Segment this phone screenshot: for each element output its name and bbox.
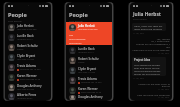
staticText: Find people xyxy=(69,19,83,22)
button[interactable]: Karen Werner xyxy=(66,85,112,95)
staticText: Julia Herbst xyxy=(78,24,95,28)
staticText: Send message 37:45 xyxy=(20,78,41,81)
staticText: Karen Werner xyxy=(78,87,98,91)
staticText: Let's refine the project plan and focus … xyxy=(134,63,164,75)
staticText: Find people xyxy=(8,19,22,22)
button[interactable]: Project Idea xyxy=(132,57,166,76)
staticText: 11 Apr, 2021 xyxy=(158,52,170,55)
staticText: Files content xyxy=(133,18,147,21)
button[interactable]: Yes, thanks! So, I forgot time. Thanks f… xyxy=(132,37,170,52)
button[interactable]: Travis Adams xyxy=(5,62,51,72)
staticText: People xyxy=(69,11,88,19)
staticText: Julia Herbst xyxy=(133,11,161,18)
button[interactable]: Clyde Bryant xyxy=(5,52,51,62)
staticText: I got the funds you asked for! xyxy=(132,93,170,96)
staticText: Julia Herbst xyxy=(17,24,34,28)
staticText: Travis Adams xyxy=(17,64,36,68)
staticText: Douglas Anthony xyxy=(17,84,42,88)
button[interactable]: Douglas Anthony xyxy=(66,95,112,100)
staticText: Last seen 2 min ago xyxy=(17,28,37,31)
staticText: Hello, have you read my ideas about the … xyxy=(134,24,164,30)
staticText: Last seen 1 h ago xyxy=(17,58,35,61)
staticText: Clyde Bryant xyxy=(78,67,97,71)
staticText: 11 Apr, 2021 xyxy=(133,77,145,80)
button[interactable]: Julia Herbst xyxy=(66,22,112,32)
staticText: Lucille Back xyxy=(17,34,34,38)
button[interactable]: Travis Adams xyxy=(66,75,112,85)
staticText: 11 Apr, 2021 xyxy=(158,88,170,91)
staticText: Clyde Bryant xyxy=(17,54,36,58)
staticText: Robert Schultz xyxy=(17,44,38,48)
button[interactable]: Julia Herbst xyxy=(5,22,51,32)
button[interactable]: Lucille Back xyxy=(66,45,112,55)
staticText: 11 Apr, 2021 xyxy=(158,96,170,99)
button[interactable]: Alberto Perez xyxy=(5,92,51,100)
staticText: Please call me after lunch to discuss th… xyxy=(132,82,170,88)
staticText: Last seen 3 h ago xyxy=(17,88,35,91)
staticText: 11 Apr, 2021 xyxy=(133,32,145,35)
staticText: People xyxy=(8,11,27,19)
button[interactable]: Send email xyxy=(66,40,112,44)
button[interactable]: Robert Schultz xyxy=(5,42,51,52)
staticText: Yesterday 08:02 xyxy=(17,97,33,100)
button[interactable]: I got the funds you asked for! xyxy=(132,93,170,96)
staticText: Call xyxy=(69,33,74,36)
button[interactable]: Robert Schultz xyxy=(66,55,112,65)
button[interactable]: Clyde Bryant xyxy=(66,65,112,75)
button[interactable]: Please call me after lunch to discuss th… xyxy=(132,82,170,88)
staticText: Online xyxy=(78,61,85,64)
staticText: Yes, thanks! So, I forgot time. Thanks f… xyxy=(132,37,170,52)
button[interactable]: Douglas Anthony xyxy=(5,82,51,92)
button[interactable]: Send message xyxy=(66,36,112,40)
button[interactable]: Hello, have you read my ideas about the … xyxy=(132,23,166,31)
staticText: Lucille Back xyxy=(78,47,95,51)
staticText: Online xyxy=(17,48,24,51)
staticText: Yesterday 20:14 xyxy=(78,51,94,54)
staticText: Project Idea xyxy=(134,58,151,62)
staticText: Last seen 1 h ago xyxy=(78,71,96,74)
staticText: Douglas Anthony xyxy=(78,95,103,99)
button[interactable]: Karen Werner xyxy=(5,72,51,82)
staticText: Robert Schultz xyxy=(78,57,99,61)
staticText: Alberto Perez xyxy=(17,93,37,97)
staticText: Send message 37:45 xyxy=(81,91,102,94)
staticText: Incoming call 15 min xyxy=(81,81,102,84)
staticText: Incoming call 15 min xyxy=(20,68,41,71)
staticText: Karen Werner xyxy=(17,74,37,78)
staticText: Send email xyxy=(69,41,82,44)
staticText: Last seen 2 min ago xyxy=(78,28,98,31)
staticText: Send message xyxy=(69,37,86,40)
staticText: Travis Adams xyxy=(78,77,97,81)
staticText: Yesterday 20:14 xyxy=(17,38,33,41)
button[interactable]: Lucille Back xyxy=(5,32,51,42)
button[interactable]: Call xyxy=(66,32,112,36)
